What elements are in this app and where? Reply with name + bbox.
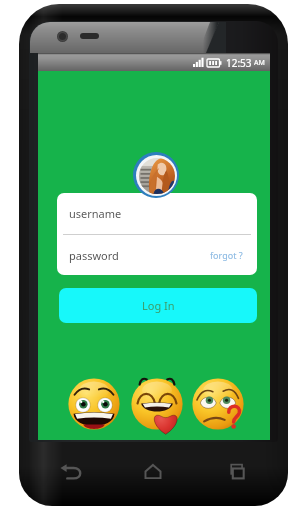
staticText: forgot ? [210,249,243,261]
button[interactable]: username [57,193,257,234]
staticText: Log In [142,298,175,313]
button[interactable]: Face with heart [126,373,188,435]
button[interactable]: Log In [59,288,257,323]
staticText: username [69,206,122,221]
staticText: 12:53 [226,56,252,70]
button[interactable]: Grinning face [63,373,125,435]
button[interactable]: forgot ? [210,249,257,261]
button[interactable]: Home [135,453,171,489]
button[interactable]: Profile picture [133,152,179,198]
button[interactable]: Back [53,454,89,490]
button[interactable]: password [57,235,257,275]
staticText: AM [254,58,265,68]
staticText: password [69,248,119,263]
button[interactable]: Recent apps [218,453,254,489]
button[interactable]: Thinking face [187,373,249,435]
